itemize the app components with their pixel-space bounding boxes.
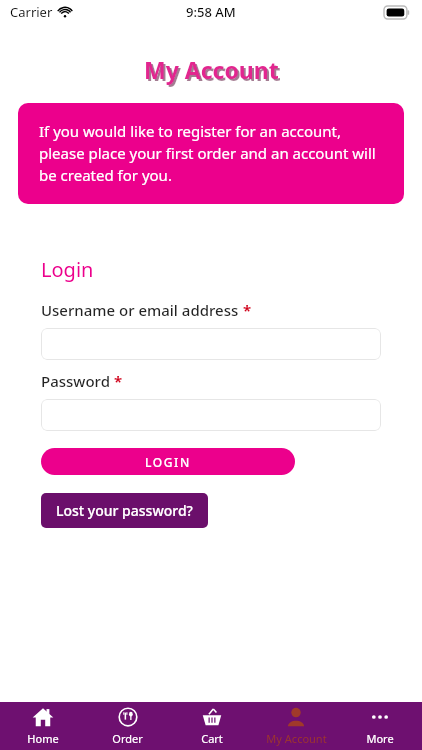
button[interactable] — [41, 399, 381, 431]
staticText: Username or email address — [41, 300, 239, 320]
staticText: Login — [41, 256, 94, 283]
button[interactable]: More — [338, 702, 422, 750]
staticText: Order — [112, 731, 143, 746]
staticText: * — [243, 300, 252, 320]
button[interactable]: My Account — [254, 702, 338, 750]
staticText: If you would like to register for an acc… — [39, 121, 383, 186]
button[interactable]: Order — [85, 702, 170, 750]
staticText: My Account — [146, 56, 281, 87]
staticText: * — [114, 371, 123, 391]
staticText: Lost your password? — [56, 501, 193, 520]
staticText: Home — [27, 731, 59, 746]
staticText: LOGIN — [145, 454, 191, 470]
button[interactable]: Cart — [170, 702, 254, 750]
staticText: My Account — [266, 731, 327, 746]
staticText: Carrier — [10, 3, 53, 21]
staticText: More — [366, 731, 394, 746]
button[interactable] — [41, 328, 381, 360]
button[interactable]: LOGIN — [41, 448, 295, 475]
staticText: Password — [41, 371, 110, 391]
staticText: 9:58 AM — [186, 3, 236, 21]
staticText: Cart — [201, 731, 223, 746]
staticText: My Account — [144, 54, 279, 85]
button[interactable]: Lost your password? — [41, 493, 208, 528]
button[interactable]: Home — [0, 702, 85, 750]
